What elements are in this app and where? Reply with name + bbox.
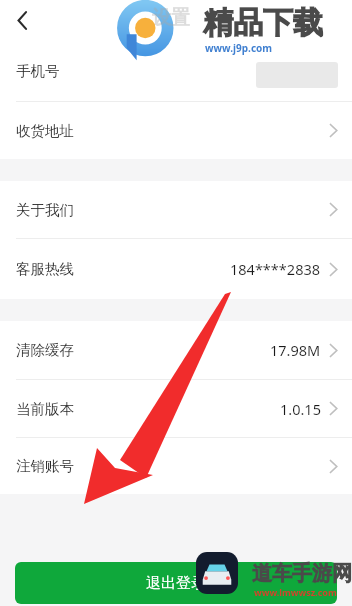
button[interactable]: 清除缓存 bbox=[0, 321, 352, 379]
button[interactable]: Back bbox=[4, 2, 40, 38]
staticText: 17.98M bbox=[270, 340, 321, 360]
staticText: 手机号 bbox=[16, 62, 60, 80]
staticText: 184****2838 bbox=[230, 259, 321, 279]
button[interactable]: 收货地址 bbox=[0, 102, 352, 159]
button[interactable]: 客服热线 bbox=[0, 239, 352, 299]
staticText: 当前版本 bbox=[16, 400, 74, 418]
staticText: 客服热线 bbox=[16, 260, 74, 278]
staticText: 道车手游网 bbox=[252, 561, 352, 586]
staticText: 退出登录 bbox=[146, 574, 206, 593]
button[interactable]: 注销账号 bbox=[0, 438, 352, 494]
staticText: www.j9p.com bbox=[205, 41, 273, 55]
button[interactable]: 关于我们 bbox=[0, 181, 352, 238]
staticText: www.lmwwsz.com bbox=[254, 586, 337, 598]
staticText: 收货地址 bbox=[16, 122, 74, 140]
staticText: 清除缓存 bbox=[16, 341, 74, 359]
staticText: 设置 bbox=[152, 6, 190, 30]
staticText: 精品下载 bbox=[203, 4, 323, 42]
button[interactable]: 手机号 bbox=[0, 40, 352, 101]
staticText: 注销账号 bbox=[16, 457, 74, 475]
staticText: 1.0.15 bbox=[280, 399, 321, 419]
staticText: 关于我们 bbox=[16, 201, 74, 219]
button[interactable]: 退出登录 bbox=[15, 562, 337, 604]
button[interactable]: 当前版本 bbox=[0, 380, 352, 437]
